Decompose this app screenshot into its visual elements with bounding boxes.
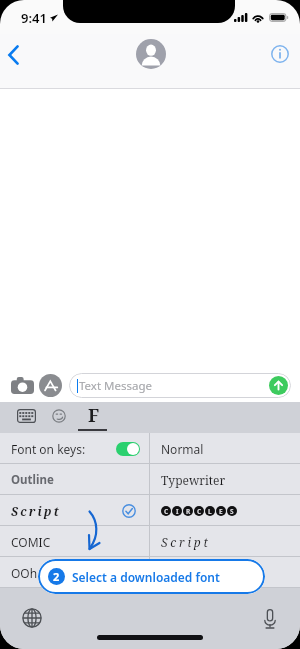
button[interactable] [150, 557, 300, 588]
button[interactable]: Fonts [79, 402, 108, 433]
button[interactable]: Dictation [257, 606, 283, 632]
button[interactable]: Font on keys: [0, 433, 149, 464]
staticText: L [208, 507, 212, 516]
button[interactable]: Keyboard [12, 404, 40, 428]
staticText: R [186, 507, 191, 516]
button[interactable]: Switch keyboard [19, 605, 45, 631]
staticText: Script [161, 534, 211, 550]
button[interactable]: Script [150, 526, 300, 557]
staticText: C [164, 507, 169, 516]
staticText: C [197, 507, 202, 516]
staticText: OOh [11, 565, 38, 581]
button[interactable]: Stickers [45, 404, 73, 428]
staticText: Select a downloaded font [72, 569, 220, 585]
button[interactable]: Script [0, 495, 149, 526]
button[interactable]: Outline [0, 464, 149, 495]
button[interactable]: COMIC [0, 526, 149, 557]
button[interactable]: Send [269, 376, 288, 395]
staticText: F [88, 403, 100, 428]
staticText: Script [11, 503, 61, 519]
staticText: Outline [11, 472, 54, 488]
button[interactable]: Contact [136, 39, 166, 69]
staticText: Normal [161, 441, 204, 457]
button[interactable]: Typewriter [150, 464, 300, 495]
button[interactable]: Info [266, 40, 294, 68]
button[interactable]: Apps [39, 374, 62, 397]
staticText: I [176, 507, 179, 516]
staticText: COMIC [11, 534, 51, 550]
button[interactable]: Normal [150, 433, 300, 464]
staticText: Font on keys: [11, 441, 86, 457]
button[interactable]: C [150, 495, 300, 526]
button[interactable]: 2 [38, 559, 265, 594]
button[interactable]: Camera [9, 372, 35, 398]
staticText: Text Message [79, 378, 153, 394]
button[interactable]: OOh [0, 557, 149, 588]
staticText: 2 [53, 569, 60, 584]
staticText: Typewriter [161, 472, 226, 488]
staticText: S [230, 507, 234, 516]
staticText: E [219, 507, 223, 516]
staticText: 9:41 [21, 9, 47, 27]
button[interactable]: Text Message [69, 373, 291, 398]
button[interactable]: Back [0, 40, 26, 70]
